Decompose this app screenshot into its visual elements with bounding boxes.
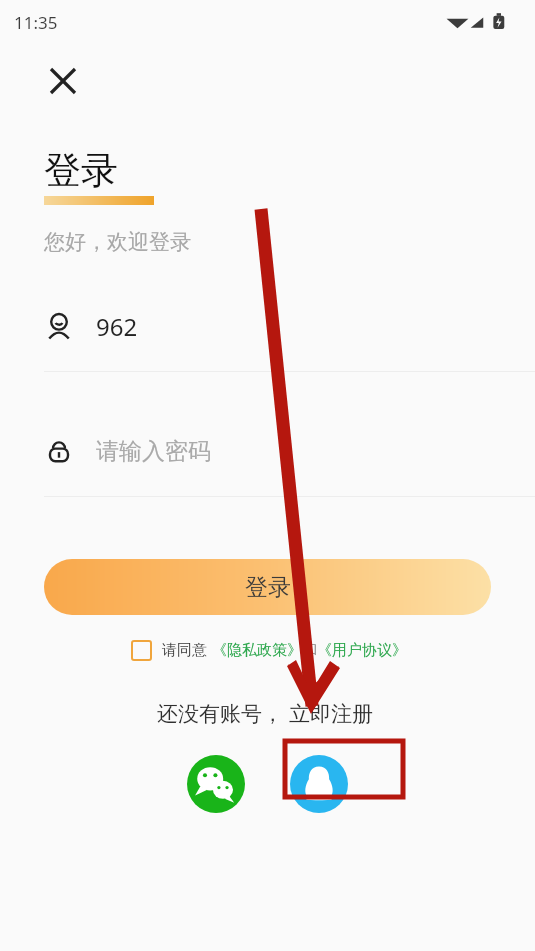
staticText: 登录	[245, 573, 291, 602]
staticText: 登录	[44, 147, 118, 194]
staticText: 和	[302, 641, 317, 660]
staticText: 请输入密码	[96, 437, 211, 466]
button[interactable]: QQ login	[290, 755, 348, 813]
staticText: 《用户协议》	[317, 641, 407, 660]
button[interactable]: WeChat login	[187, 755, 245, 813]
button[interactable]: 立即注册	[283, 695, 379, 733]
staticText: 11:35	[14, 11, 58, 34]
button[interactable]: 962	[44, 303, 535, 349]
staticText: 《隐私政策》	[212, 641, 302, 660]
button[interactable]: Agree checkbox	[129, 638, 153, 662]
staticText: 立即注册	[289, 701, 373, 727]
staticText: 请同意	[162, 641, 207, 660]
button[interactable]: 《隐私政策》	[212, 641, 302, 660]
button[interactable]: Close	[44, 62, 82, 100]
staticText: 您好，欢迎登录	[44, 229, 191, 255]
button[interactable]: 《用户协议》	[317, 641, 407, 660]
staticText: 还没有账号，	[157, 701, 283, 727]
staticText: 962	[96, 310, 138, 343]
button[interactable]: 登录	[44, 559, 491, 615]
button[interactable]: 请输入密码	[44, 428, 535, 474]
